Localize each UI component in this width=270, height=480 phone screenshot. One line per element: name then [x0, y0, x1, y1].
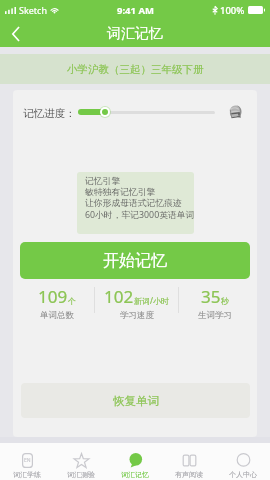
- staticText: 让你形成母语式记忆痕迹: [85, 198, 182, 209]
- staticText: 109: [38, 285, 68, 308]
- staticText: 词汇记忆: [121, 470, 149, 479]
- button[interactable]: 恢复单词: [21, 383, 250, 418]
- staticText: 9:41 AM: [117, 4, 154, 17]
- staticText: 小学沪教（三起）三年级下册: [67, 63, 204, 76]
- staticText: 词汇记忆: [107, 25, 163, 43]
- staticText: 有声阅读: [175, 470, 203, 479]
- staticText: 个: [68, 296, 76, 306]
- staticText: 秒: [221, 296, 229, 306]
- staticText: 35: [201, 285, 221, 308]
- button[interactable]: 开始记忆: [20, 242, 250, 279]
- staticText: 词汇测验: [67, 470, 95, 479]
- staticText: 记忆引擎: [85, 176, 121, 187]
- button[interactable]: 个人中心: [216, 443, 270, 480]
- button[interactable]: 词汇记忆: [108, 443, 162, 480]
- staticText: 记忆进度：: [23, 107, 76, 120]
- staticText: 敏特独有记忆引擎: [85, 187, 156, 198]
- button[interactable]: 词汇测验: [54, 443, 108, 480]
- staticText: 60小时，牢记3000英语单词: [85, 209, 194, 221]
- button[interactable]: Back: [0, 20, 32, 47]
- staticText: 词汇学练: [13, 470, 41, 479]
- staticText: 学习速度: [120, 310, 154, 319]
- staticText: 开始记忆: [103, 251, 167, 271]
- button[interactable]: 有声阅读: [162, 443, 216, 480]
- staticText: 单词总数: [40, 310, 74, 319]
- staticText: 100%: [220, 4, 245, 17]
- staticText: Sketch: [19, 4, 47, 16]
- staticText: 102: [104, 285, 134, 308]
- button[interactable]: EN: [0, 443, 54, 480]
- staticText: 恢复单词: [113, 394, 159, 408]
- staticText: 生词学习: [198, 310, 232, 319]
- staticText: 新词/小时: [134, 295, 169, 306]
- staticText: EN: [24, 457, 31, 464]
- staticText: 个人中心: [229, 470, 257, 479]
